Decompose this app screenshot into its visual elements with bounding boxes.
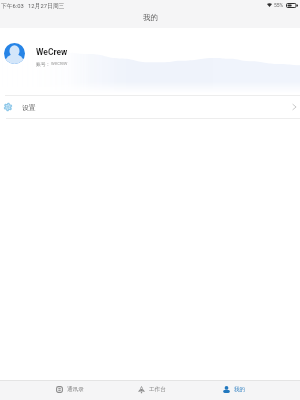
staticText: 账号：: [36, 61, 51, 67]
staticText: WeCrew: [36, 47, 68, 57]
staticText: 55%: [274, 2, 284, 8]
button[interactable]: 工作台: [111, 381, 193, 400]
button[interactable]: 我的: [193, 381, 275, 400]
staticText: 我的: [143, 13, 158, 22]
staticText: 通讯录: [67, 386, 84, 393]
button[interactable]: 设置: [0, 96, 300, 118]
staticText: 下午6:03 12月27日周三: [1, 2, 65, 9]
staticText: 我的: [234, 386, 246, 393]
button[interactable]: 通讯录: [29, 381, 111, 400]
staticText: 工作台: [149, 386, 166, 393]
staticText: wecrew: [51, 61, 68, 67]
staticText: 设置: [22, 103, 36, 112]
